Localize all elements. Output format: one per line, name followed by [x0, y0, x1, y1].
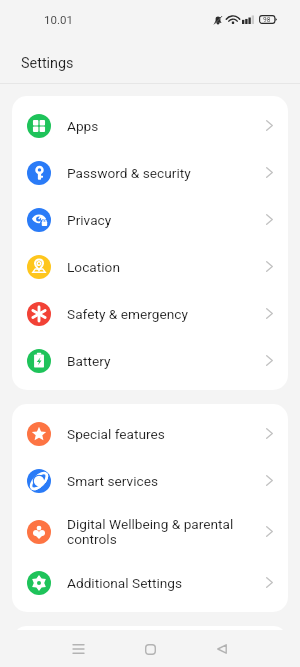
button[interactable]: Apps: [12, 102, 288, 149]
staticText: Apps: [67, 118, 258, 134]
button[interactable]: Privacy: [12, 196, 288, 243]
staticText: Password & security: [67, 165, 258, 181]
button[interactable]: Users & accounts: [12, 632, 288, 661]
staticText: Users & accounts: [67, 639, 258, 655]
staticText: Safety & emergency: [67, 306, 258, 322]
button[interactable]: Smart services: [12, 457, 288, 504]
staticText: 98: [263, 16, 271, 24]
staticText: Additional Settings: [67, 575, 258, 591]
button[interactable]: Home: [135, 634, 165, 664]
button[interactable]: Back: [207, 634, 237, 664]
staticText: Digital Wellbeing & parental controls: [67, 516, 258, 548]
button[interactable]: Special features: [12, 410, 288, 457]
button[interactable]: Additional Settings: [12, 559, 288, 606]
button[interactable]: Safety & emergency: [12, 290, 288, 337]
button[interactable]: Recent apps: [63, 634, 93, 664]
staticText: Settings: [21, 55, 74, 72]
staticText: Smart services: [67, 473, 258, 489]
button[interactable]: Digital Wellbeing & parental controls: [12, 504, 288, 559]
staticText: Privacy: [67, 212, 258, 228]
button[interactable]: Password & security: [12, 149, 288, 196]
staticText: Location: [67, 259, 258, 275]
staticText: Battery: [67, 353, 258, 369]
button[interactable]: Location: [12, 243, 288, 290]
button[interactable]: Battery: [12, 337, 288, 384]
staticText: Special features: [67, 426, 258, 442]
staticText: 10.01: [44, 13, 73, 26]
